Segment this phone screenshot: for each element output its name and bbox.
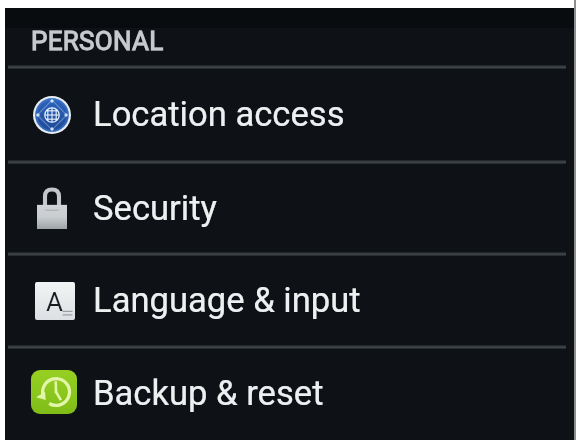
- button[interactable]: Language and input: [5, 254, 574, 347]
- staticText: PERSONAL: [31, 26, 164, 56]
- button[interactable]: Backup and reset: [5, 347, 574, 440]
- staticText: Language & input: [93, 280, 361, 321]
- staticText: A: [46, 287, 63, 317]
- staticText: Backup & reset: [93, 373, 324, 414]
- staticText: Security: [93, 188, 217, 229]
- staticText: Location access: [93, 94, 345, 135]
- button[interactable]: Location access: [5, 67, 574, 162]
- button[interactable]: Security: [5, 162, 574, 254]
